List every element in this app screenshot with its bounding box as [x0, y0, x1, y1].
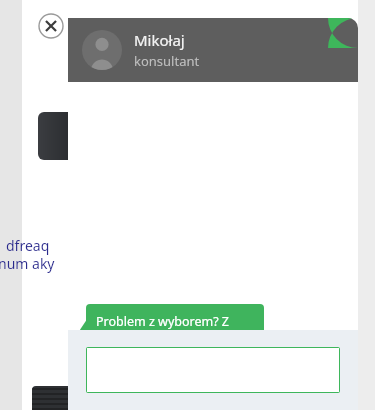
staticText: num aky [0, 254, 55, 273]
staticText: Mikołaj [134, 30, 185, 50]
staticText: 12:57 [276, 328, 305, 343]
staticText: konsultant [134, 52, 200, 70]
button[interactable]: Message input [86, 347, 340, 393]
button[interactable]: Mikołaj [68, 18, 358, 82]
staticText: dfreaq [6, 236, 50, 255]
button[interactable]: Close [38, 13, 64, 39]
button[interactable]: Problem z wyborem? Z chęcią opowiem więc… [86, 304, 264, 373]
staticText: Problem z wyborem? Z chęcią opowiem więc… [96, 313, 254, 364]
